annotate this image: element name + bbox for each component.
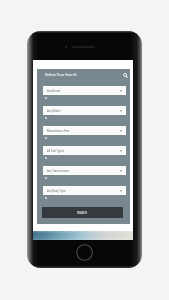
button[interactable]: Any Model — [43, 106, 126, 115]
staticText: Any Brand — [47, 89, 61, 93]
staticText: Refine Your Search — [45, 72, 77, 77]
staticText: Manufacture Year — [47, 129, 70, 133]
staticText: Any Transmission — [47, 169, 70, 173]
button[interactable]: Manufacture Year — [43, 126, 126, 135]
button[interactable]: Any Body Type — [43, 186, 126, 195]
button[interactable]: Any Brand — [43, 86, 126, 95]
staticText: Any Body Type — [47, 189, 66, 193]
button[interactable]: Any Transmission — [43, 166, 126, 175]
staticText: All Fuel Types — [47, 149, 65, 153]
button[interactable]: Search — [121, 71, 129, 79]
button[interactable]: All Fuel Types — [43, 146, 126, 155]
staticText: Any Model — [47, 109, 61, 113]
staticText: SEARCH — [77, 211, 88, 215]
button[interactable]: SEARCH — [42, 207, 123, 218]
